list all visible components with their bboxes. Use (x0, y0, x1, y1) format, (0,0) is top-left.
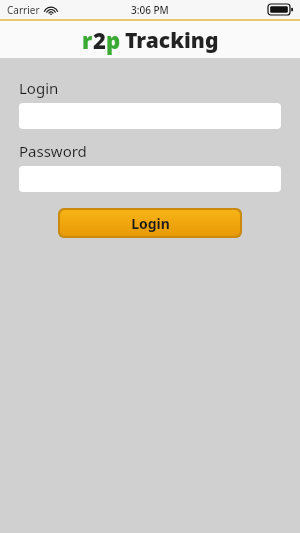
staticText: Login (19, 78, 59, 98)
staticText: Tracking (125, 26, 219, 55)
staticText: Login (131, 214, 170, 233)
staticText: Carrier (7, 3, 40, 17)
staticText: 2 (93, 25, 106, 55)
button[interactable]: Login (58, 208, 242, 238)
staticText: r (82, 25, 93, 55)
staticText: Password (19, 141, 87, 161)
staticText: 3:06 PM (131, 3, 169, 17)
staticText: p (106, 25, 121, 55)
